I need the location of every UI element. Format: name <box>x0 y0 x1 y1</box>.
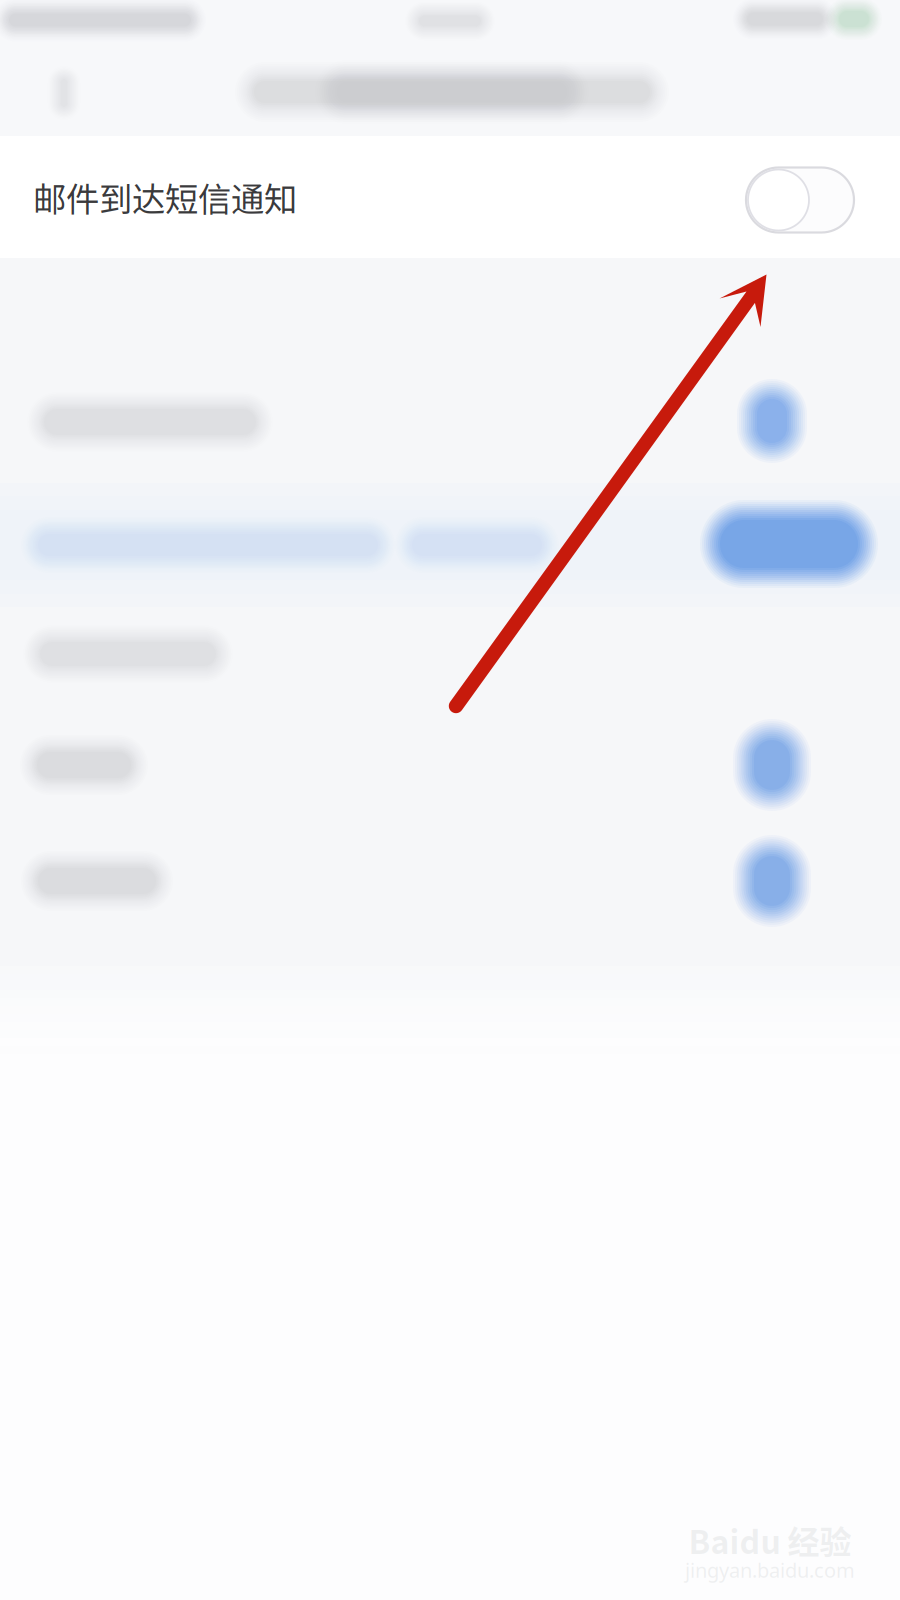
staticText: 邮件到达短信通知 <box>33 173 297 221</box>
staticText: Baidu 经验 <box>688 1517 851 1563</box>
button[interactable]: 邮件到达短信通知 <box>0 136 900 258</box>
staticText: jingyan.baidu.com <box>685 1556 855 1584</box>
